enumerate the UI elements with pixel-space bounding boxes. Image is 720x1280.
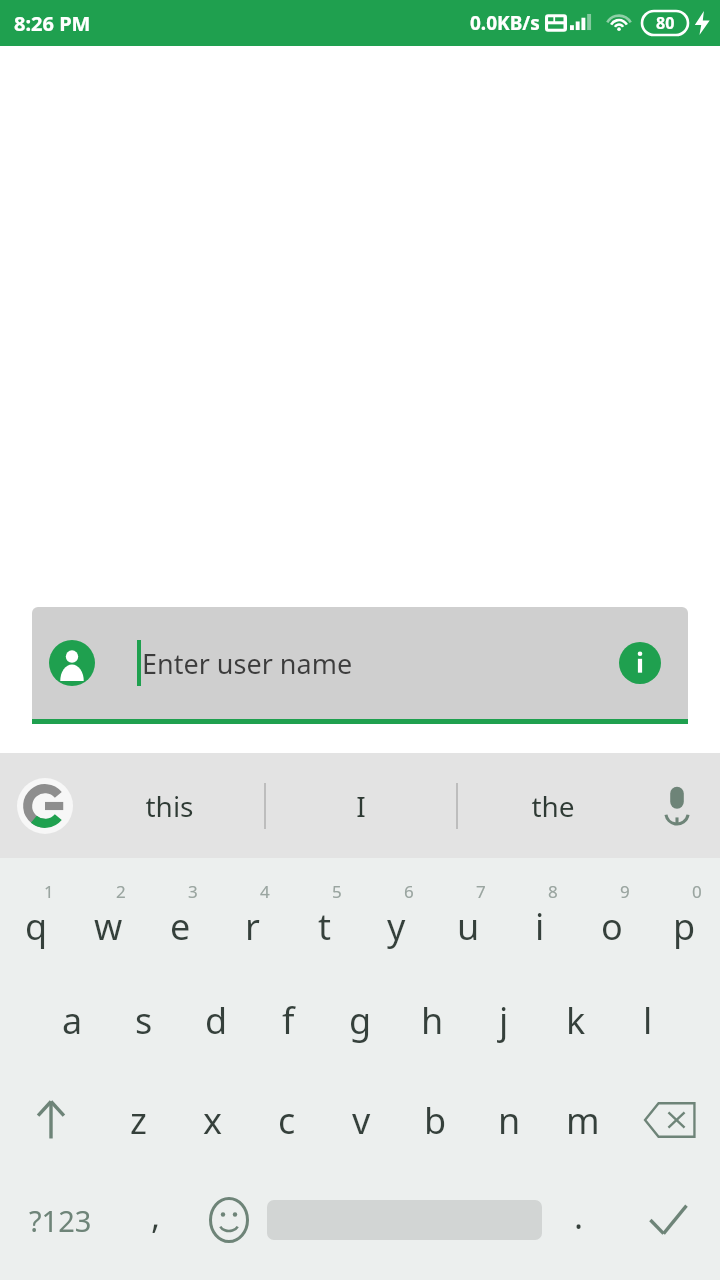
staticText: n <box>498 1096 521 1145</box>
button[interactable]: x <box>176 1070 250 1170</box>
staticText: c <box>278 1096 296 1145</box>
staticText: i <box>535 902 545 951</box>
staticText: u <box>457 902 480 951</box>
staticText: 1 <box>44 880 54 903</box>
staticText: d <box>205 996 228 1045</box>
staticText: m <box>566 1096 600 1145</box>
button[interactable]: h <box>396 970 468 1070</box>
staticText: 5 <box>332 880 342 903</box>
button[interactable]: the <box>458 753 648 858</box>
staticText: s <box>135 996 153 1045</box>
button[interactable]: ?123 <box>0 1170 121 1270</box>
staticText: t <box>318 902 331 951</box>
button[interactable]: 7 <box>432 870 504 970</box>
button[interactable]: s <box>108 970 180 1070</box>
button[interactable]: User <box>48 639 96 687</box>
staticText: , <box>151 1193 161 1239</box>
staticText: v <box>352 1096 371 1145</box>
staticText: . <box>574 1193 584 1239</box>
staticText: 9 <box>620 880 630 903</box>
button[interactable]: m <box>546 1070 620 1170</box>
staticText: 8:26 PM <box>14 10 91 37</box>
staticText: this <box>145 787 194 825</box>
staticText: 8 <box>548 880 558 903</box>
button[interactable]: 1 <box>0 870 72 970</box>
button[interactable]: Backspace <box>620 1070 720 1170</box>
staticText: Enter user name <box>142 645 353 682</box>
button[interactable]: Space <box>267 1170 542 1270</box>
staticText: 2 <box>116 880 126 903</box>
staticText: a <box>62 996 83 1045</box>
staticText: b <box>424 1096 447 1145</box>
staticText: h <box>421 996 444 1045</box>
staticText: l <box>643 996 653 1045</box>
button[interactable]: Emoji <box>190 1170 267 1270</box>
button[interactable]: Voice input <box>648 777 706 835</box>
button[interactable]: v <box>324 1070 398 1170</box>
staticText: 7 <box>476 880 486 903</box>
staticText: 3 <box>188 880 198 903</box>
button[interactable]: 2 <box>72 870 144 970</box>
staticText: z <box>130 1096 147 1145</box>
button[interactable]: Shift <box>0 1070 101 1170</box>
staticText: x <box>203 1096 223 1145</box>
staticText: o <box>601 902 623 951</box>
button[interactable]: 8 <box>504 870 576 970</box>
button[interactable]: 9 <box>576 870 648 970</box>
button[interactable]: l <box>612 970 684 1070</box>
button[interactable]: 0 <box>648 870 720 970</box>
staticText: f <box>282 996 295 1045</box>
button[interactable]: User <box>32 607 688 719</box>
button[interactable]: . <box>542 1170 615 1270</box>
staticText: w <box>94 902 123 951</box>
button[interactable]: Google <box>16 777 74 835</box>
staticText: j <box>499 996 509 1045</box>
button[interactable]: b <box>398 1070 472 1170</box>
staticText: 4 <box>260 880 270 903</box>
button[interactable]: z <box>101 1070 176 1170</box>
button[interactable]: f <box>252 970 324 1070</box>
button[interactable]: n <box>472 1070 546 1170</box>
staticText: ?123 <box>29 1201 92 1240</box>
staticText: g <box>349 996 372 1045</box>
button[interactable]: a <box>36 970 108 1070</box>
button[interactable]: j <box>468 970 540 1070</box>
button[interactable]: g <box>324 970 396 1070</box>
staticText: e <box>170 902 191 951</box>
button[interactable]: I <box>266 753 456 858</box>
staticText: 80 <box>656 12 675 34</box>
button[interactable]: k <box>540 970 612 1070</box>
button[interactable]: 5 <box>288 870 360 970</box>
button[interactable]: Info <box>618 641 662 685</box>
staticText: the <box>531 787 575 825</box>
button[interactable]: this <box>74 753 264 858</box>
staticText: q <box>25 902 48 951</box>
button[interactable]: d <box>180 970 252 1070</box>
button[interactable]: c <box>250 1070 324 1170</box>
button[interactable]: 6 <box>360 870 432 970</box>
button[interactable]: 3 <box>144 870 216 970</box>
staticText: 0 <box>692 880 702 903</box>
staticText: I <box>356 787 366 825</box>
staticText: k <box>566 996 586 1045</box>
staticText: 6 <box>404 880 414 903</box>
staticText: 0.0KB/s <box>470 10 540 36</box>
staticText: p <box>673 902 696 951</box>
button[interactable]: 4 <box>216 870 288 970</box>
button[interactable]: Enter <box>615 1170 720 1270</box>
button[interactable]: , <box>121 1170 190 1270</box>
staticText: y <box>387 902 406 951</box>
staticText: r <box>245 902 260 951</box>
